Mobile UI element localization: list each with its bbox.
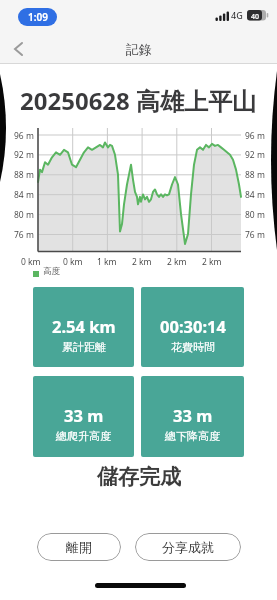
staticText: 80 m	[245, 209, 265, 221]
staticText: 1:09	[28, 10, 48, 24]
button[interactable]	[6, 39, 32, 61]
staticText: 儲存完成	[97, 464, 181, 490]
staticText: 離開	[66, 539, 92, 555]
button[interactable]: 00:30:14	[141, 287, 244, 367]
staticText: 記錄	[126, 41, 152, 57]
button[interactable]: 2.54 km	[33, 287, 134, 367]
staticText: 96 m	[14, 130, 34, 142]
staticText: 20250628 高雄上平山	[20, 84, 257, 117]
button[interactable]: 分享成就	[135, 533, 241, 561]
staticText: 總下降高度	[165, 429, 220, 443]
staticText: 00:30:14	[160, 315, 226, 337]
button[interactable]: 離開	[37, 533, 121, 561]
staticText: 92 m	[14, 149, 34, 161]
staticText: 4G	[231, 9, 243, 21]
staticText: 分享成就	[162, 539, 214, 555]
staticText: 88 m	[245, 169, 265, 181]
staticText: 2.54 km	[52, 315, 116, 337]
staticText: 88 m	[14, 169, 34, 181]
staticText: 80 m	[14, 209, 34, 221]
staticText: 1 km	[97, 256, 117, 268]
staticText: 高度	[43, 266, 60, 277]
staticText: 92 m	[245, 149, 265, 161]
button[interactable]: 33 m	[141, 376, 244, 457]
staticText: 33 m	[173, 404, 213, 426]
button[interactable]: 33 m	[33, 376, 134, 457]
staticText: 0 km	[21, 256, 41, 268]
staticText: 96 m	[245, 130, 265, 142]
staticText: 總爬升高度	[56, 429, 111, 443]
staticText: 40	[251, 12, 260, 22]
staticText: 84 m	[245, 189, 265, 201]
staticText: 0 km	[63, 256, 83, 268]
staticText: 2 km	[132, 256, 152, 268]
staticText: 76 m	[245, 229, 265, 241]
staticText: 33 m	[64, 404, 104, 426]
staticText: 累計距離	[62, 340, 106, 354]
staticText: 84 m	[14, 189, 34, 201]
staticText: 2 km	[202, 256, 222, 268]
staticText: 花費時間	[171, 340, 215, 354]
staticText: 2 km	[167, 256, 187, 268]
staticText: 76 m	[14, 229, 34, 241]
